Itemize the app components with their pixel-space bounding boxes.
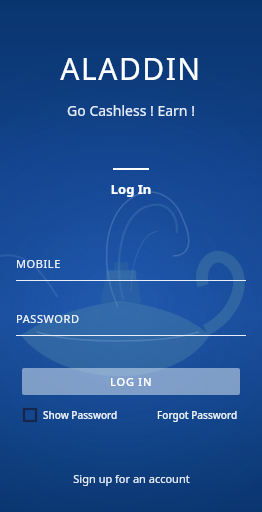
button[interactable]: MOBILE bbox=[16, 256, 246, 281]
button[interactable]: Forgot Password bbox=[157, 408, 238, 422]
staticText: Forgot Password bbox=[157, 408, 238, 422]
staticText: Log In bbox=[0, 180, 262, 198]
staticText: Sign up for an account bbox=[73, 471, 190, 486]
button[interactable]: Show Password bbox=[24, 408, 118, 422]
staticText: PASSWORD bbox=[16, 311, 80, 326]
button[interactable]: LOG IN bbox=[22, 368, 240, 395]
staticText: Go Cashless ! Earn ! bbox=[0, 101, 262, 120]
button[interactable]: PASSWORD bbox=[16, 311, 246, 336]
staticText: ALADDIN bbox=[0, 48, 262, 89]
staticText: Show Password bbox=[43, 408, 118, 422]
button[interactable]: Sign up for an account bbox=[0, 461, 262, 496]
staticText: MOBILE bbox=[16, 256, 61, 271]
staticText: LOG IN bbox=[110, 374, 153, 389]
